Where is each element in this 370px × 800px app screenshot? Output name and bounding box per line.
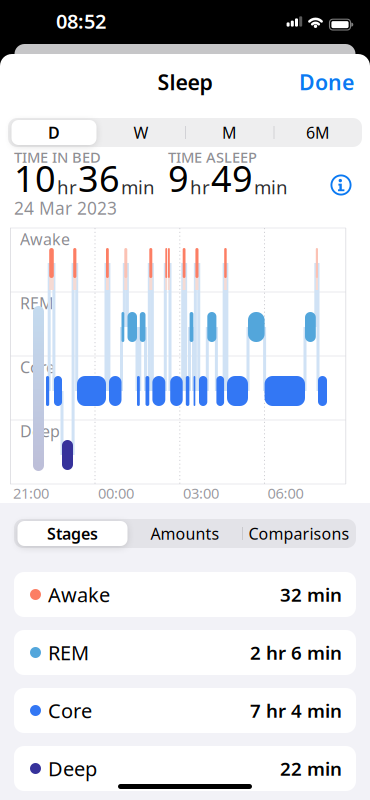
- staticText: 7 hr 4 min: [250, 698, 342, 723]
- staticText: 6M: [306, 122, 330, 143]
- staticText: 32 min: [280, 582, 342, 607]
- button[interactable]: W: [98, 120, 184, 145]
- staticText: 10: [14, 154, 56, 202]
- staticText: 22 min: [280, 756, 342, 781]
- staticText: Core: [20, 356, 55, 378]
- staticText: Deep: [48, 755, 97, 782]
- button[interactable]: D: [11, 120, 96, 145]
- staticText: TIME IN BED: [14, 147, 101, 167]
- staticText: hr: [190, 175, 210, 199]
- button[interactable]: Comparisons: [243, 521, 355, 546]
- staticText: Amounts: [150, 523, 219, 544]
- button[interactable]: M: [186, 120, 272, 145]
- staticText: Deep: [20, 420, 60, 442]
- button[interactable]: Done: [284, 67, 354, 97]
- button[interactable]: 6M: [275, 120, 361, 145]
- button[interactable]: Amounts: [129, 521, 241, 546]
- staticText: 2 hr 6 min: [250, 640, 342, 665]
- staticText: 00:00: [98, 483, 134, 503]
- staticText: 21:00: [13, 483, 49, 503]
- staticText: min: [121, 175, 155, 199]
- staticText: 08:52: [56, 8, 106, 34]
- staticText: Stages: [47, 523, 98, 544]
- staticText: 06:00: [267, 483, 303, 503]
- staticText: 03:00: [183, 483, 219, 503]
- staticText: hr: [57, 175, 77, 199]
- staticText: Sleep: [157, 68, 212, 96]
- staticText: 9: [168, 154, 189, 202]
- staticText: Done: [299, 68, 354, 96]
- staticText: Awake: [20, 228, 70, 250]
- staticText: W: [133, 122, 148, 143]
- button[interactable]: More information: [326, 170, 356, 200]
- staticText: REM: [48, 639, 89, 666]
- button[interactable]: Stages: [17, 521, 127, 546]
- staticText: TIME ASLEEP: [168, 147, 257, 167]
- staticText: min: [254, 175, 288, 199]
- staticText: Core: [48, 697, 92, 724]
- staticText: Comparisons: [248, 523, 349, 544]
- staticText: M: [222, 122, 237, 143]
- staticText: 49: [211, 154, 253, 202]
- staticText: Awake: [48, 581, 110, 608]
- staticText: 24 Mar 2023: [14, 196, 117, 219]
- staticText: D: [48, 122, 60, 143]
- staticText: 36: [78, 154, 120, 202]
- staticText: REM: [20, 292, 54, 314]
